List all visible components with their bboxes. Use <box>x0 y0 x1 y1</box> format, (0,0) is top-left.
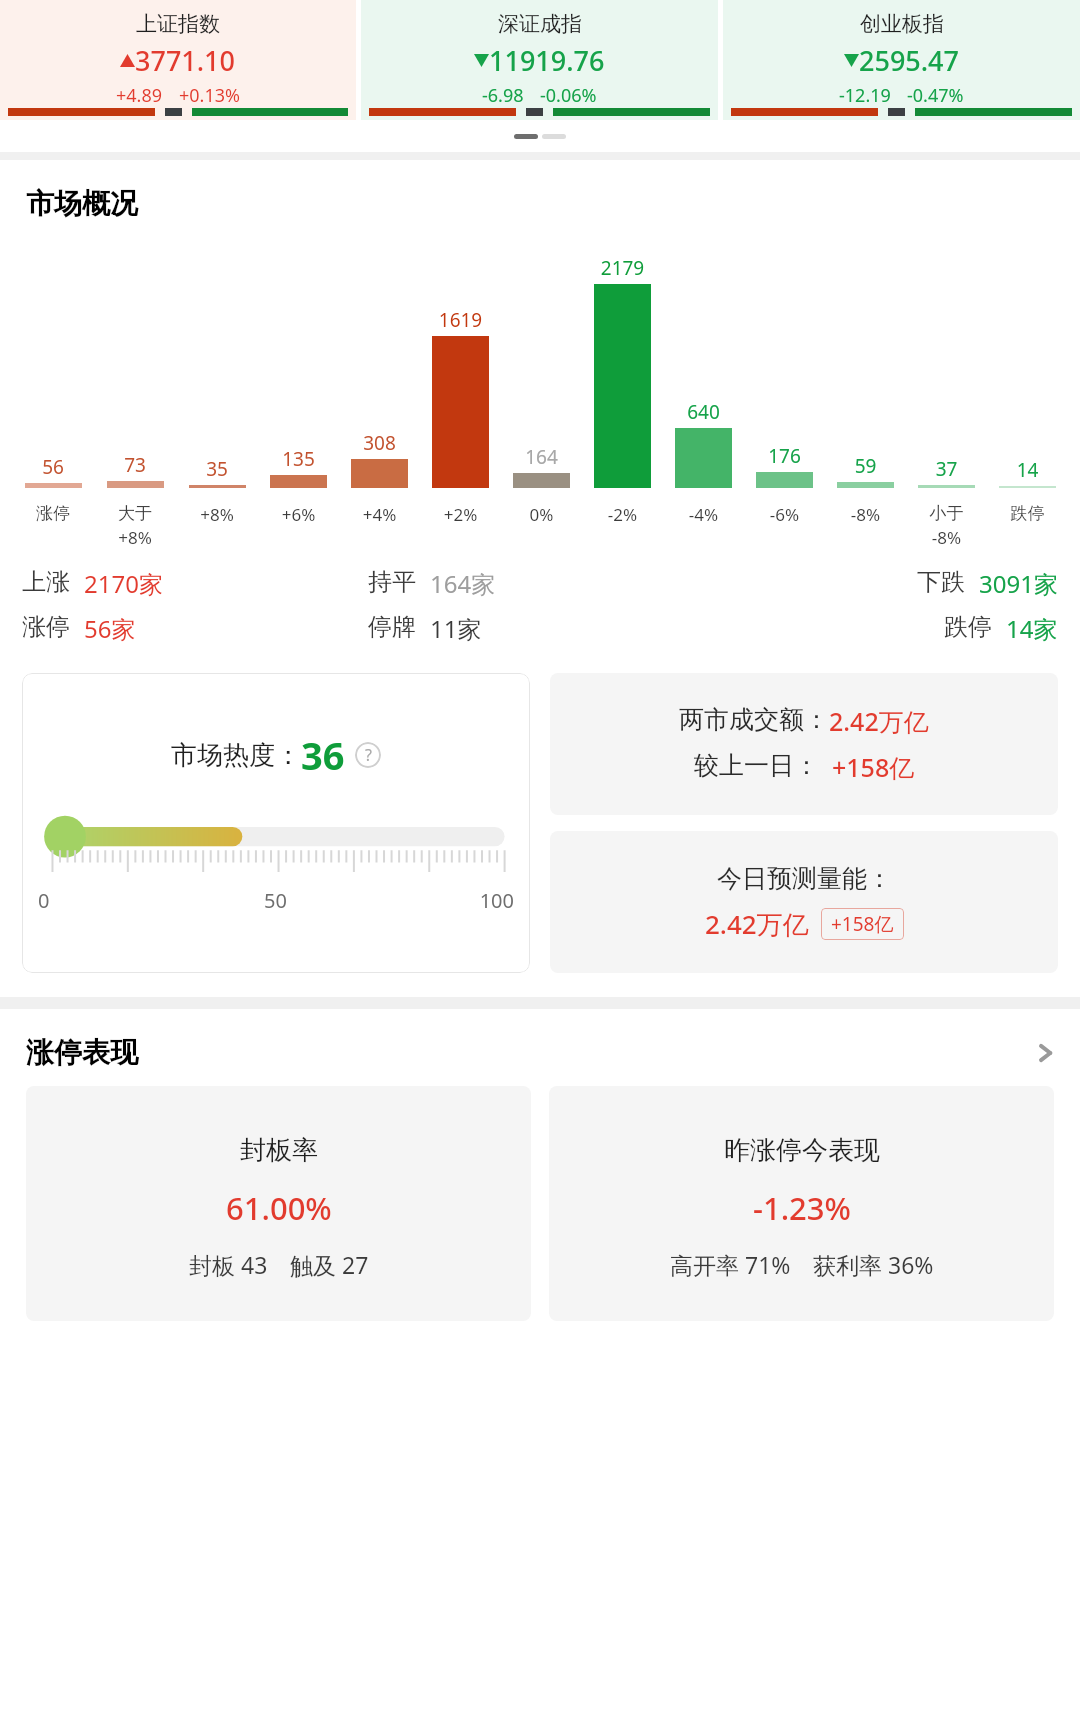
staticText: 1619 <box>420 307 501 333</box>
staticText: 涨停表现 <box>26 1035 138 1070</box>
staticText: +158亿 <box>819 750 915 784</box>
staticText: 36 <box>301 729 345 781</box>
staticText: 56家 <box>84 612 136 645</box>
staticText: -4% <box>663 503 744 526</box>
staticText: 135 <box>258 446 339 472</box>
staticText: 100 <box>355 887 514 914</box>
staticText: 跌停 <box>944 612 992 642</box>
staticText: 176 <box>744 443 825 469</box>
staticText: 市场热度： <box>171 739 301 772</box>
staticText: 大于 +8% <box>94 503 176 549</box>
staticText: 37 <box>906 456 987 482</box>
staticText: 深证成指 <box>498 11 582 37</box>
staticText: 164 <box>501 444 582 470</box>
staticText: 今日预测量能： <box>717 863 892 894</box>
button[interactable]: 涨停表现 <box>0 1009 1080 1086</box>
staticText: 308 <box>339 430 420 456</box>
staticText: +158亿 <box>831 911 894 937</box>
button[interactable]: 两市成交额： <box>550 673 1058 815</box>
staticText: 59 <box>825 453 906 479</box>
staticText: 73 <box>94 452 176 478</box>
staticText: 下跌 <box>917 567 965 597</box>
staticText: 14 <box>987 457 1068 483</box>
staticText: -1.23% <box>753 1187 851 1229</box>
staticText: 封板率 <box>240 1134 318 1167</box>
staticText: 小于 -8% <box>906 503 987 549</box>
button[interactable]: 封板率 <box>26 1086 531 1321</box>
staticText: 市场概况 <box>26 186 138 221</box>
staticText: -6.98 <box>482 83 524 108</box>
staticText: 停牌 <box>368 612 416 642</box>
button[interactable]: 深证成指 <box>361 0 718 120</box>
staticText: 164家 <box>430 567 496 600</box>
staticText: 两市成交额： <box>679 704 829 735</box>
staticText: 上证指数 <box>136 11 220 37</box>
button[interactable]: 上证指数 <box>0 0 356 120</box>
button[interactable]: 创业板指 <box>723 0 1080 120</box>
staticText: -6% <box>744 503 825 526</box>
other: 查看更多 <box>1034 1042 1056 1064</box>
button[interactable]: 今日预测量能： <box>550 831 1058 973</box>
staticText: 高开率 71% <box>670 1249 791 1280</box>
staticText: 2170家 <box>84 567 163 600</box>
staticText: 上涨 <box>22 567 70 597</box>
staticText: -0.47% <box>907 83 964 108</box>
staticText: -2% <box>582 503 663 526</box>
staticText: 640 <box>663 399 744 425</box>
button[interactable]: 昨涨停今表现 <box>549 1086 1054 1321</box>
staticText: 61.00% <box>226 1187 332 1229</box>
other: 说明 <box>355 742 381 768</box>
staticText: +4.89 <box>116 83 163 108</box>
staticText: +8% <box>176 503 258 526</box>
staticText: 封板 43 <box>189 1249 268 1280</box>
staticText: -8% <box>825 503 906 526</box>
staticText: 昨涨停今表现 <box>724 1134 880 1167</box>
staticText: 创业板指 <box>860 11 944 37</box>
staticText: +4% <box>339 503 420 526</box>
staticText: 3771.10 <box>135 42 236 79</box>
staticText: 11919.76 <box>489 42 605 79</box>
staticText: 涨停 <box>22 612 70 642</box>
staticText: -12.19 <box>839 83 891 108</box>
staticText: 2179 <box>582 255 663 281</box>
staticText: -0.06% <box>540 83 597 108</box>
staticText: 35 <box>176 456 258 482</box>
staticText: 3091家 <box>979 567 1058 600</box>
staticText: 2.42万亿 <box>705 906 809 942</box>
staticText: 2595.47 <box>859 42 960 79</box>
staticText: 14家 <box>1006 612 1058 645</box>
staticText: ? <box>365 744 372 766</box>
staticText: 跌停 <box>987 503 1068 524</box>
staticText: 56 <box>12 454 94 480</box>
staticText: 较上一日： <box>694 750 819 781</box>
button[interactable]: 市场热度： <box>22 673 530 973</box>
staticText: 0% <box>501 503 582 526</box>
staticText: 涨停 <box>12 503 94 524</box>
staticText: +0.13% <box>179 83 240 108</box>
staticText: 触及 27 <box>290 1249 369 1280</box>
staticText: 50 <box>196 887 355 914</box>
staticText: 获利率 36% <box>813 1249 934 1280</box>
staticText: 持平 <box>368 567 416 597</box>
staticText: 2.42万亿 <box>829 704 929 738</box>
staticText: 0 <box>38 887 196 914</box>
staticText: +2% <box>420 503 501 526</box>
staticText: 11家 <box>430 612 482 645</box>
staticText: +6% <box>258 503 339 526</box>
